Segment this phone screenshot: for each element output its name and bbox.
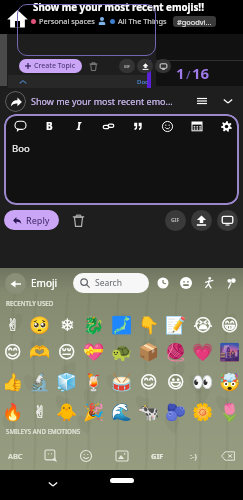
button[interactable]: Reply to topic	[5, 91, 26, 112]
staticText: 🫶	[29, 342, 51, 362]
button[interactable]: Letters	[2, 444, 28, 468]
button[interactable]: ❄️	[55, 313, 79, 337]
button[interactable]: Delete topic	[87, 60, 99, 72]
button[interactable]: Screen share	[155, 59, 171, 73]
button[interactable]: Menu	[194, 93, 210, 109]
staticText: I	[77, 119, 81, 133]
button[interactable]: 🐢	[110, 340, 134, 364]
button[interactable]: 😁	[218, 313, 242, 337]
staticText: 👀	[192, 372, 214, 392]
staticText: Create Topic	[34, 61, 76, 71]
button[interactable]: Expand topic	[18, 77, 28, 87]
button[interactable]: 🔥	[1, 400, 25, 424]
staticText: Boo	[12, 142, 30, 155]
button[interactable]: 😭	[191, 313, 215, 337]
button[interactable]: Emoticons	[180, 444, 206, 468]
button[interactable]: 🌼	[191, 400, 215, 424]
button[interactable]: 📝	[164, 313, 188, 337]
button[interactable]: 🌷	[218, 400, 242, 424]
button[interactable]: cal	[188, 117, 206, 135]
button[interactable]: 🫐	[164, 400, 188, 424]
button[interactable]: Collapse	[220, 93, 236, 109]
button[interactable]: #goodvi...	[173, 16, 216, 27]
button[interactable]: Delete draft	[69, 211, 87, 229]
button[interactable]: Backspace	[215, 444, 241, 468]
button[interactable]: 😊	[137, 370, 161, 394]
button[interactable]: 🗾	[110, 313, 134, 337]
button[interactable]: Reply	[4, 210, 59, 230]
button[interactable]: Hide keyboard	[41, 472, 65, 496]
button[interactable]: ✌️	[28, 400, 52, 424]
button[interactable]: 🌆	[218, 340, 242, 364]
button[interactable]: 🐥	[55, 400, 79, 424]
button[interactable]: Images	[109, 444, 135, 468]
staticText: 🍹	[83, 372, 105, 392]
staticText: RECENTLY USED	[6, 299, 54, 307]
button[interactable]: 🌊	[110, 400, 134, 424]
staticText: 🧶	[165, 342, 187, 362]
button[interactable]: Create Topic	[19, 59, 82, 73]
staticText: #goodvi...	[177, 17, 212, 27]
button[interactable]: 🔬	[28, 370, 52, 394]
button[interactable]: 🎉	[82, 400, 106, 424]
button[interactable]: GIF	[165, 210, 186, 231]
staticText: ABC	[8, 451, 23, 461]
button[interactable]: 👇	[137, 313, 161, 337]
button[interactable]: 💝	[82, 340, 106, 364]
button[interactable]: 💗	[191, 340, 215, 364]
staticText: 🐉	[83, 315, 105, 335]
button[interactable]: 📦	[137, 340, 161, 364]
button[interactable]: 🐉	[82, 313, 106, 337]
button[interactable]: clock	[154, 274, 172, 292]
staticText: /	[186, 67, 191, 82]
staticText: All The Things	[118, 16, 167, 26]
button[interactable]: animal	[222, 274, 240, 292]
button[interactable]: 🍹	[82, 370, 106, 394]
button[interactable]: Upload file	[191, 210, 212, 231]
staticText: 🐢	[111, 342, 133, 362]
button[interactable]: Back	[5, 273, 26, 294]
button[interactable]: gear	[217, 117, 235, 135]
button[interactable]: Search	[73, 273, 149, 293]
button[interactable]: person	[200, 274, 218, 292]
button[interactable]: chat	[11, 117, 29, 135]
staticText: 🤯	[219, 372, 241, 392]
button[interactable]: i	[70, 117, 88, 135]
button[interactable]: Stickers	[38, 444, 64, 468]
staticText: 📝	[165, 315, 187, 335]
button[interactable]: 🥁	[110, 370, 134, 394]
button[interactable]: link	[99, 117, 117, 135]
staticText: 🌆	[219, 342, 241, 362]
staticText: 😭	[193, 315, 213, 335]
button[interactable]: GIF	[144, 444, 170, 468]
staticText: 🧊	[56, 372, 78, 392]
button[interactable]: 😊	[1, 340, 25, 364]
button[interactable]: smiley	[177, 274, 195, 292]
button[interactable]: GIF	[119, 59, 135, 73]
button[interactable]: b	[40, 117, 58, 135]
button[interactable]: 😔	[55, 340, 79, 364]
button[interactable]: emoji	[158, 117, 176, 135]
staticText: 🐥	[56, 402, 78, 422]
button[interactable]: Upload	[137, 59, 153, 73]
staticText: 🥺	[29, 315, 51, 335]
button[interactable]: 🐄	[137, 400, 161, 424]
staticText: 😊	[4, 342, 22, 362]
button[interactable]: 👍	[1, 370, 25, 394]
button[interactable]: 🥺	[28, 313, 52, 337]
button[interactable]: 🧶	[164, 340, 188, 364]
staticText: 💗	[192, 342, 214, 362]
staticText: B	[46, 119, 53, 133]
button[interactable]: 🧊	[55, 370, 79, 394]
button[interactable]: 😃	[164, 370, 188, 394]
staticText: :-)	[190, 451, 197, 461]
button[interactable]: 🤯	[218, 370, 242, 394]
button[interactable]: quote	[129, 117, 147, 135]
button[interactable]: Share screen	[217, 210, 238, 231]
button[interactable]: Emoji	[73, 444, 99, 468]
button[interactable]: 🫶	[28, 340, 52, 364]
button[interactable]: Home	[5, 6, 29, 30]
button[interactable]: 👀	[191, 370, 215, 394]
staticText: 🌼	[192, 402, 214, 422]
button[interactable]: ✌️	[1, 313, 25, 337]
